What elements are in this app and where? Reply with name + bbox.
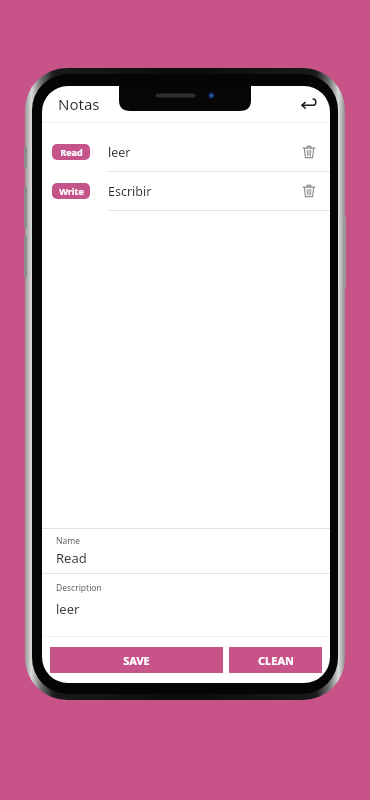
staticText: leer [56, 600, 80, 618]
button[interactable]: Write [42, 172, 330, 210]
staticText: SAVE [123, 653, 150, 668]
staticText: Escribir [108, 183, 298, 200]
staticText: Write [59, 185, 84, 197]
staticText: Name [56, 535, 80, 547]
button[interactable]: CLEAN [229, 647, 322, 673]
button[interactable]: Name [42, 529, 330, 573]
staticText: Description [56, 582, 102, 594]
button[interactable]: Back [296, 91, 322, 117]
button[interactable]: Delete [298, 141, 320, 163]
button[interactable]: Description [42, 574, 330, 624]
staticText: Notas [58, 94, 100, 114]
button[interactable]: Delete [298, 180, 320, 202]
staticText: CLEAN [258, 653, 294, 668]
staticText: Read [56, 549, 87, 567]
staticText: Read [60, 146, 83, 158]
button[interactable]: Read [42, 133, 330, 171]
button[interactable]: SAVE [50, 647, 223, 673]
staticText: leer [108, 144, 298, 161]
